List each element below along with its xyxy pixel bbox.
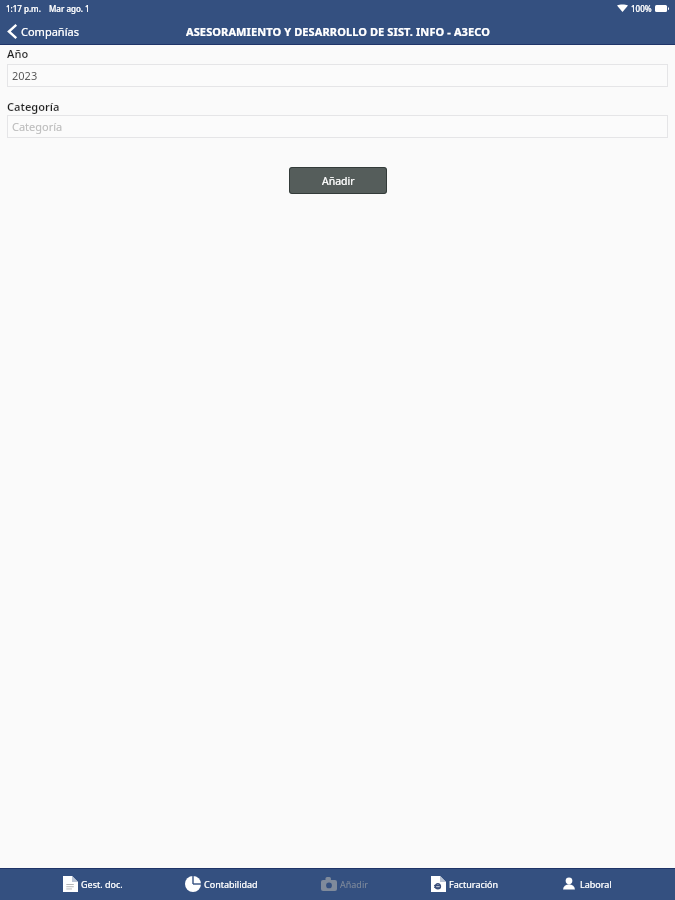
staticText: Añadir	[340, 878, 368, 890]
staticText: Laboral	[580, 878, 612, 890]
button[interactable]: Añadir	[321, 868, 368, 900]
staticText: 1:17 p.m.	[6, 3, 41, 14]
button[interactable]: Laboral	[561, 868, 612, 900]
staticText: Facturación	[449, 878, 499, 890]
button[interactable]: 2023	[7, 64, 668, 87]
button[interactable]: Añadir	[289, 167, 387, 194]
staticText: Compañías	[21, 24, 79, 39]
staticText: Categoría	[7, 99, 60, 114]
staticText: Contabilidad	[204, 878, 258, 890]
staticText: Mar ago. 1	[49, 3, 90, 14]
button[interactable]: Facturación	[431, 868, 499, 900]
staticText: Categoría	[12, 119, 63, 134]
staticText: Gest. doc.	[81, 878, 123, 890]
button[interactable]: Volver a Compañías	[0, 18, 87, 45]
button[interactable]: Contabilidad	[185, 868, 258, 900]
button[interactable]: Categoría	[7, 115, 668, 138]
staticText: Añadir	[322, 174, 355, 188]
staticText: 100%	[631, 3, 652, 14]
staticText: 2023	[12, 68, 38, 83]
staticText: Año	[7, 46, 29, 61]
staticText: ASESORAMIENTO Y DESARROLLO DE SIST. INFO…	[186, 24, 490, 39]
button[interactable]: Gest. doc.	[63, 868, 123, 900]
